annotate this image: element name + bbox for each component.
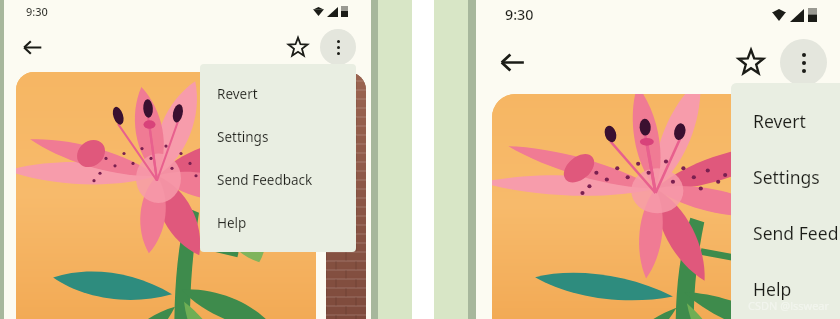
staticText: Send Feedback <box>217 171 313 189</box>
staticText: Settings <box>217 128 269 146</box>
button[interactable] <box>16 72 316 319</box>
button[interactable]: Revert <box>200 72 356 115</box>
staticText: Send Feedback <box>753 221 840 245</box>
staticText: 9:30 <box>26 4 48 19</box>
button[interactable]: Send Feedback <box>731 205 840 261</box>
button[interactable]: Revert <box>731 93 840 149</box>
button[interactable]: Back <box>486 36 538 88</box>
button[interactable]: Help <box>731 261 840 317</box>
button[interactable]: Back <box>12 27 52 67</box>
button[interactable]: More options <box>320 29 356 65</box>
staticText: Settings <box>753 165 820 189</box>
button[interactable]: More options <box>780 39 827 86</box>
button[interactable]: Favorite <box>725 36 777 88</box>
staticText: Help <box>217 214 247 232</box>
staticText: Revert <box>753 109 806 133</box>
button[interactable]: Favorite <box>278 27 318 67</box>
button[interactable]: Help <box>200 201 356 244</box>
button[interactable]: Settings <box>731 149 840 205</box>
staticText: Revert <box>217 85 258 103</box>
button[interactable] <box>492 94 840 319</box>
staticText: Help <box>753 277 792 301</box>
button[interactable] <box>326 72 366 319</box>
staticText: 9:30 <box>505 5 534 24</box>
staticText: CSDN @lsswear <box>748 298 830 313</box>
button[interactable]: Settings <box>200 115 356 158</box>
button[interactable]: Send Feedback <box>200 158 356 201</box>
